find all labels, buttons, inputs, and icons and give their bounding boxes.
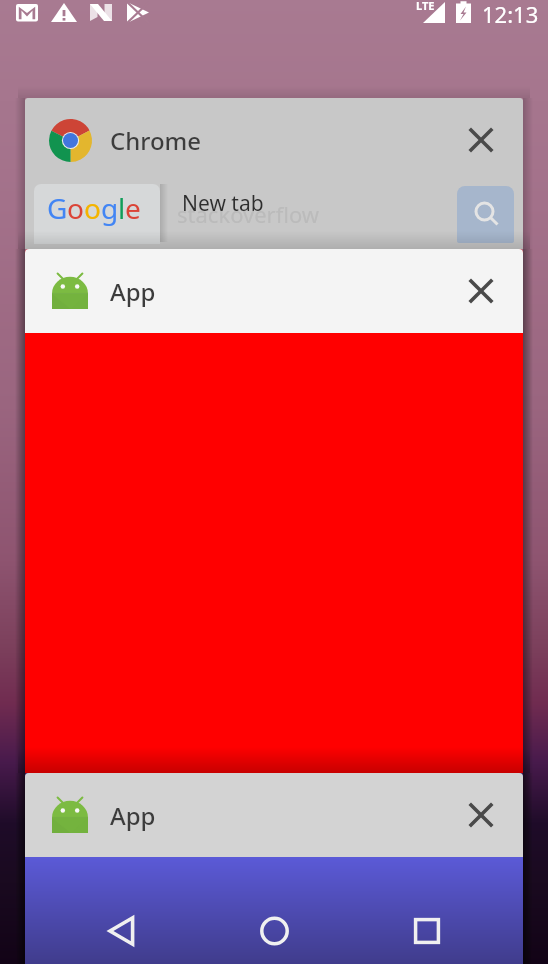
staticText: New tab <box>182 189 264 218</box>
button[interactable]: App <box>25 773 523 964</box>
staticText: 12:13 <box>482 0 539 29</box>
button[interactable]: Home <box>249 906 299 956</box>
staticText: stackoverflow <box>177 199 320 229</box>
staticText: App <box>110 275 156 308</box>
staticText: o <box>84 189 101 227</box>
button[interactable]: App <box>25 249 523 773</box>
staticText: g <box>101 189 118 227</box>
staticText: G <box>47 189 67 227</box>
button[interactable]: Recents <box>402 906 452 956</box>
staticText: App <box>110 799 156 832</box>
staticText: o <box>67 189 84 227</box>
button[interactable]: G <box>34 184 160 244</box>
button[interactable]: Back <box>97 906 147 956</box>
button[interactable]: Chrome <box>25 98 523 249</box>
button[interactable]: Search <box>457 186 514 243</box>
staticText: l <box>118 189 125 227</box>
staticText: e <box>125 189 141 227</box>
button[interactable]: Close App <box>457 791 505 839</box>
button[interactable]: Close Chrome <box>457 116 505 164</box>
button[interactable]: Close App <box>457 267 505 315</box>
staticText: Chrome <box>110 124 202 157</box>
staticText: LTE <box>416 0 435 13</box>
